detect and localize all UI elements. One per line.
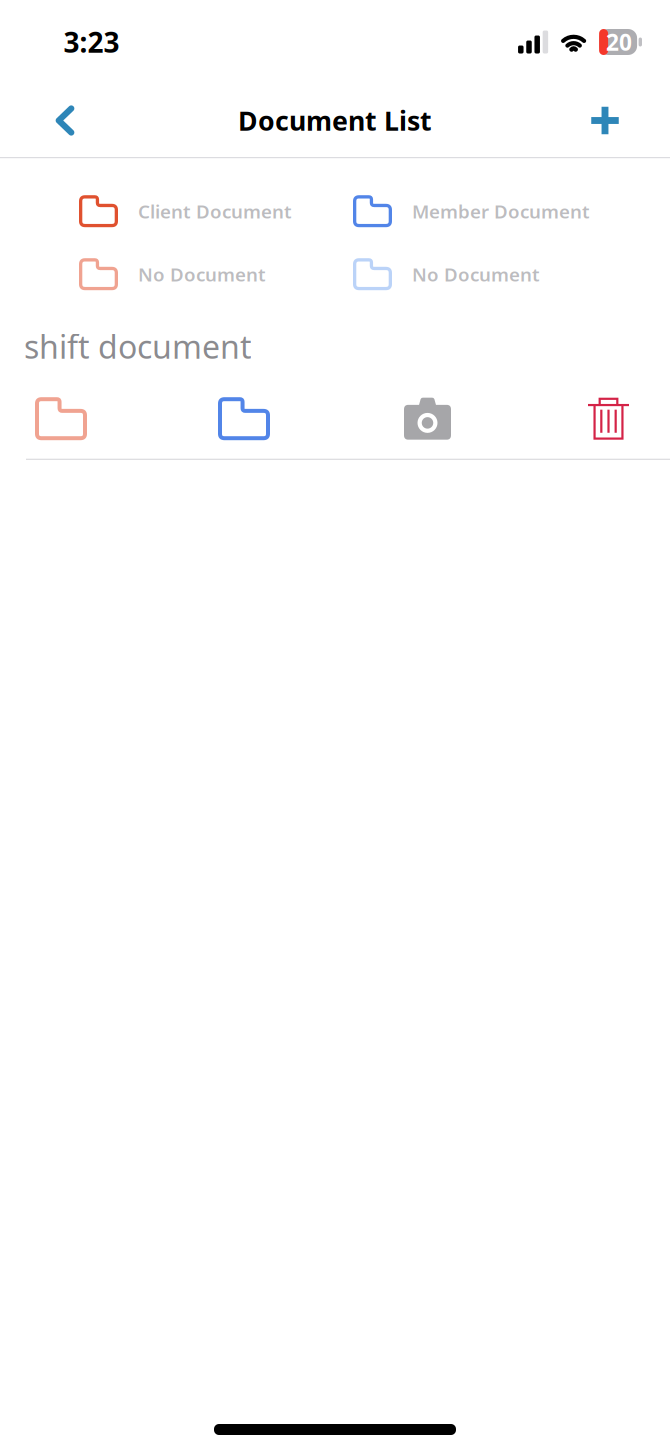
button[interactable]: Member folder (183, 390, 369, 448)
staticText: Member Document (412, 199, 590, 224)
staticText: Document List (238, 103, 432, 138)
button[interactable]: Add (569, 84, 641, 156)
staticText: No Document (138, 262, 266, 287)
button[interactable]: Back (29, 84, 101, 156)
staticText: 20 (606, 27, 632, 57)
button[interactable]: Camera (369, 390, 553, 448)
staticText: shift document (24, 325, 252, 368)
staticText: No Document (412, 262, 540, 287)
staticText: 3:23 (63, 23, 119, 61)
staticText: Client Document (138, 199, 292, 224)
button[interactable]: Client folder (0, 390, 183, 448)
button[interactable]: Delete (553, 390, 670, 448)
